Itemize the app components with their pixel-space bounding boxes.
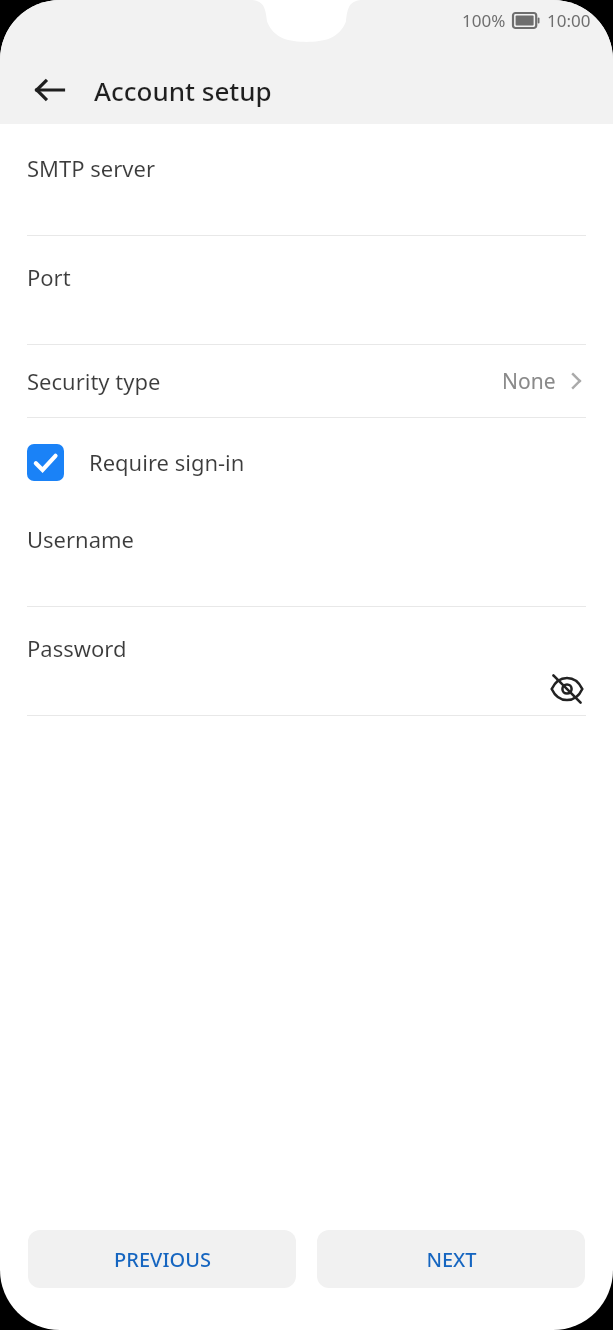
button[interactable]: Port [0,236,613,345]
staticText: PREVIOUS [114,1246,211,1273]
button[interactable]: NEXT [317,1230,585,1288]
button[interactable]: Require sign-in [0,418,613,506]
button[interactable]: Back [22,62,78,118]
button[interactable]: Username [0,506,613,607]
staticText: Port [27,262,71,292]
staticText: Username [27,524,135,554]
staticText: Require sign-in [89,447,245,477]
staticText: Password [27,633,127,663]
button[interactable]: Password [0,607,613,716]
staticText: NEXT [426,1246,477,1273]
staticText: Security type [27,366,161,396]
button[interactable]: PREVIOUS [28,1230,296,1288]
staticText: 100% [462,9,506,32]
button[interactable]: Show password [545,667,589,711]
staticText: Account setup [94,73,272,108]
staticText: SMTP server [27,153,155,183]
button[interactable]: Security type [0,345,613,418]
button[interactable]: SMTP server [0,124,613,236]
staticText: 10:00 [547,9,591,32]
staticText: None [502,367,556,396]
